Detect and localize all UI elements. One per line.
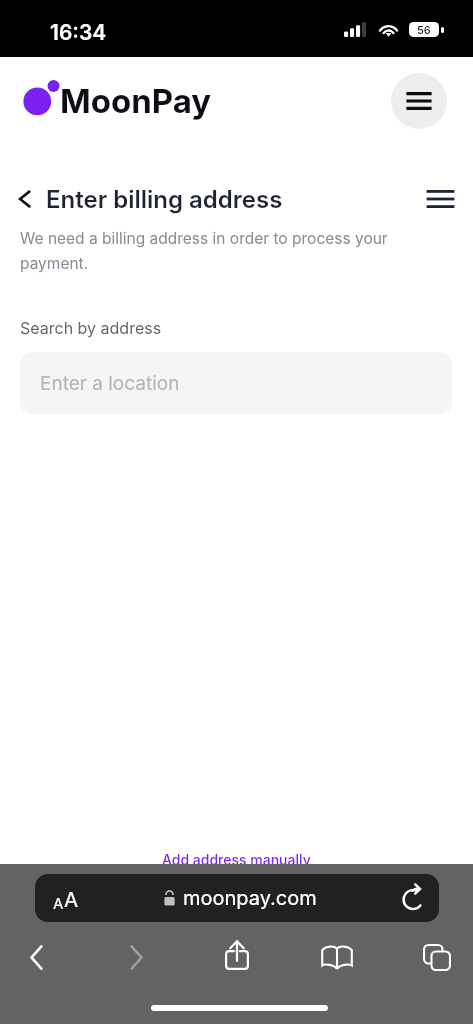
staticText: moonpay.com [183,886,317,910]
button[interactable]: More options [424,184,456,214]
button[interactable]: Bookmarks [307,933,367,981]
staticText: 56 [417,23,431,36]
staticText: A [64,887,79,912]
staticText: Enter a location [40,372,180,395]
button[interactable]: Tabs [407,933,467,981]
button[interactable]: Reload [397,882,429,914]
button[interactable]: Back [11,183,37,215]
staticText: Search by address [20,318,162,337]
button[interactable]: Add address manually [0,847,473,871]
staticText: MoonPay [60,81,212,121]
button[interactable]: Menu [391,73,447,129]
staticText: A [53,894,64,912]
staticText: Enter billing address [46,185,283,214]
staticText: We need a billing address in order to pr… [20,229,401,273]
button[interactable]: Back [6,933,66,981]
button[interactable]: Page settings [35,874,439,922]
button[interactable]: Share [207,933,267,981]
button[interactable]: Forward [106,933,166,981]
staticText: Add address manually [162,851,311,868]
button[interactable]: Enter a location [20,352,452,414]
button[interactable]: Page settings [53,887,79,912]
staticText: 16:34 [50,20,107,45]
